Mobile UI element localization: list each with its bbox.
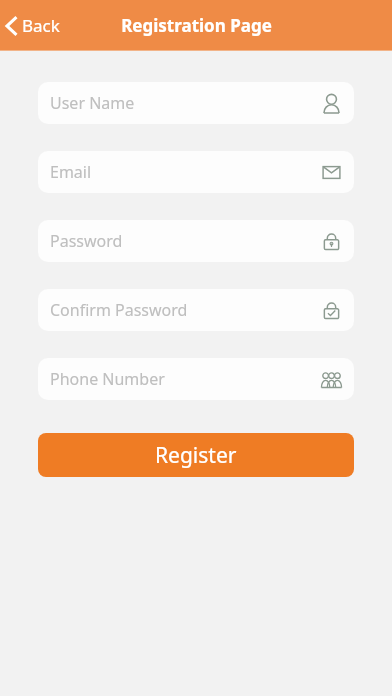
button[interactable]: Email — [38, 151, 354, 193]
button[interactable]: Confirm Password — [38, 289, 354, 331]
staticText: Phone Number — [50, 368, 165, 390]
button[interactable]: Back — [0, 0, 80, 51]
staticText: Register — [155, 441, 237, 470]
staticText: Email — [50, 161, 92, 183]
staticText: Confirm Password — [50, 299, 188, 321]
staticText: Registration Page — [121, 14, 272, 37]
button[interactable]: Register — [38, 433, 354, 477]
button[interactable]: Phone Number — [38, 358, 354, 400]
staticText: Back — [22, 14, 60, 37]
staticText: Password — [50, 230, 123, 252]
button[interactable]: User Name — [38, 82, 354, 124]
button[interactable]: Password — [38, 220, 354, 262]
staticText: User Name — [50, 92, 135, 114]
